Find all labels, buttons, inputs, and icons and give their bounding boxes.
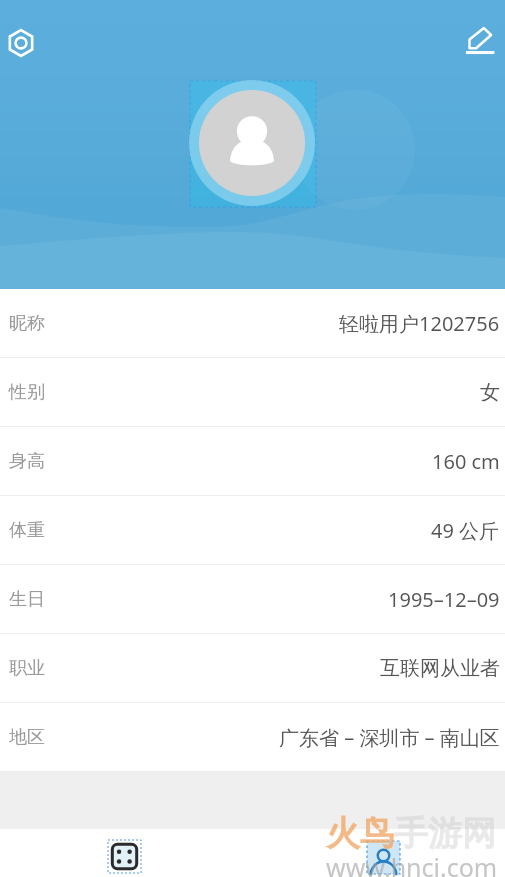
staticText: www.hncj.com: [326, 850, 498, 877]
staticText: 互联网从业者: [380, 656, 500, 681]
staticText: 广东省 – 深圳市 – 南山区: [279, 724, 500, 751]
staticText: 体重: [9, 519, 45, 542]
button[interactable]: Edit: [465, 26, 495, 56]
button[interactable]: 昵称: [0, 289, 505, 358]
button[interactable]: 性别: [0, 358, 505, 427]
staticText: 地区: [9, 726, 45, 749]
staticText: 火鸟: [326, 812, 394, 855]
button[interactable]: Avatar: [189, 80, 315, 206]
button[interactable]: 身高: [0, 427, 505, 496]
staticText: 1995–12–09: [388, 586, 500, 613]
staticText: 手游网: [394, 812, 496, 855]
staticText: 昵称: [9, 312, 45, 335]
staticText: 轻啦用户1202756: [339, 310, 500, 337]
staticText: 49 公斤: [431, 517, 500, 544]
button[interactable]: Profile: [252, 830, 505, 877]
staticText: 性别: [9, 381, 45, 404]
button[interactable]: Records: [0, 830, 252, 877]
staticText: 生日: [9, 588, 45, 611]
button[interactable]: 体重: [0, 496, 505, 565]
staticText: 女: [480, 380, 500, 405]
button[interactable]: Settings: [6, 28, 36, 58]
button[interactable]: 职业: [0, 634, 505, 703]
button[interactable]: 地区: [0, 703, 505, 772]
staticText: 160 cm: [432, 448, 500, 475]
staticText: 身高: [9, 450, 45, 473]
staticText: 职业: [9, 657, 45, 680]
button[interactable]: 生日: [0, 565, 505, 634]
